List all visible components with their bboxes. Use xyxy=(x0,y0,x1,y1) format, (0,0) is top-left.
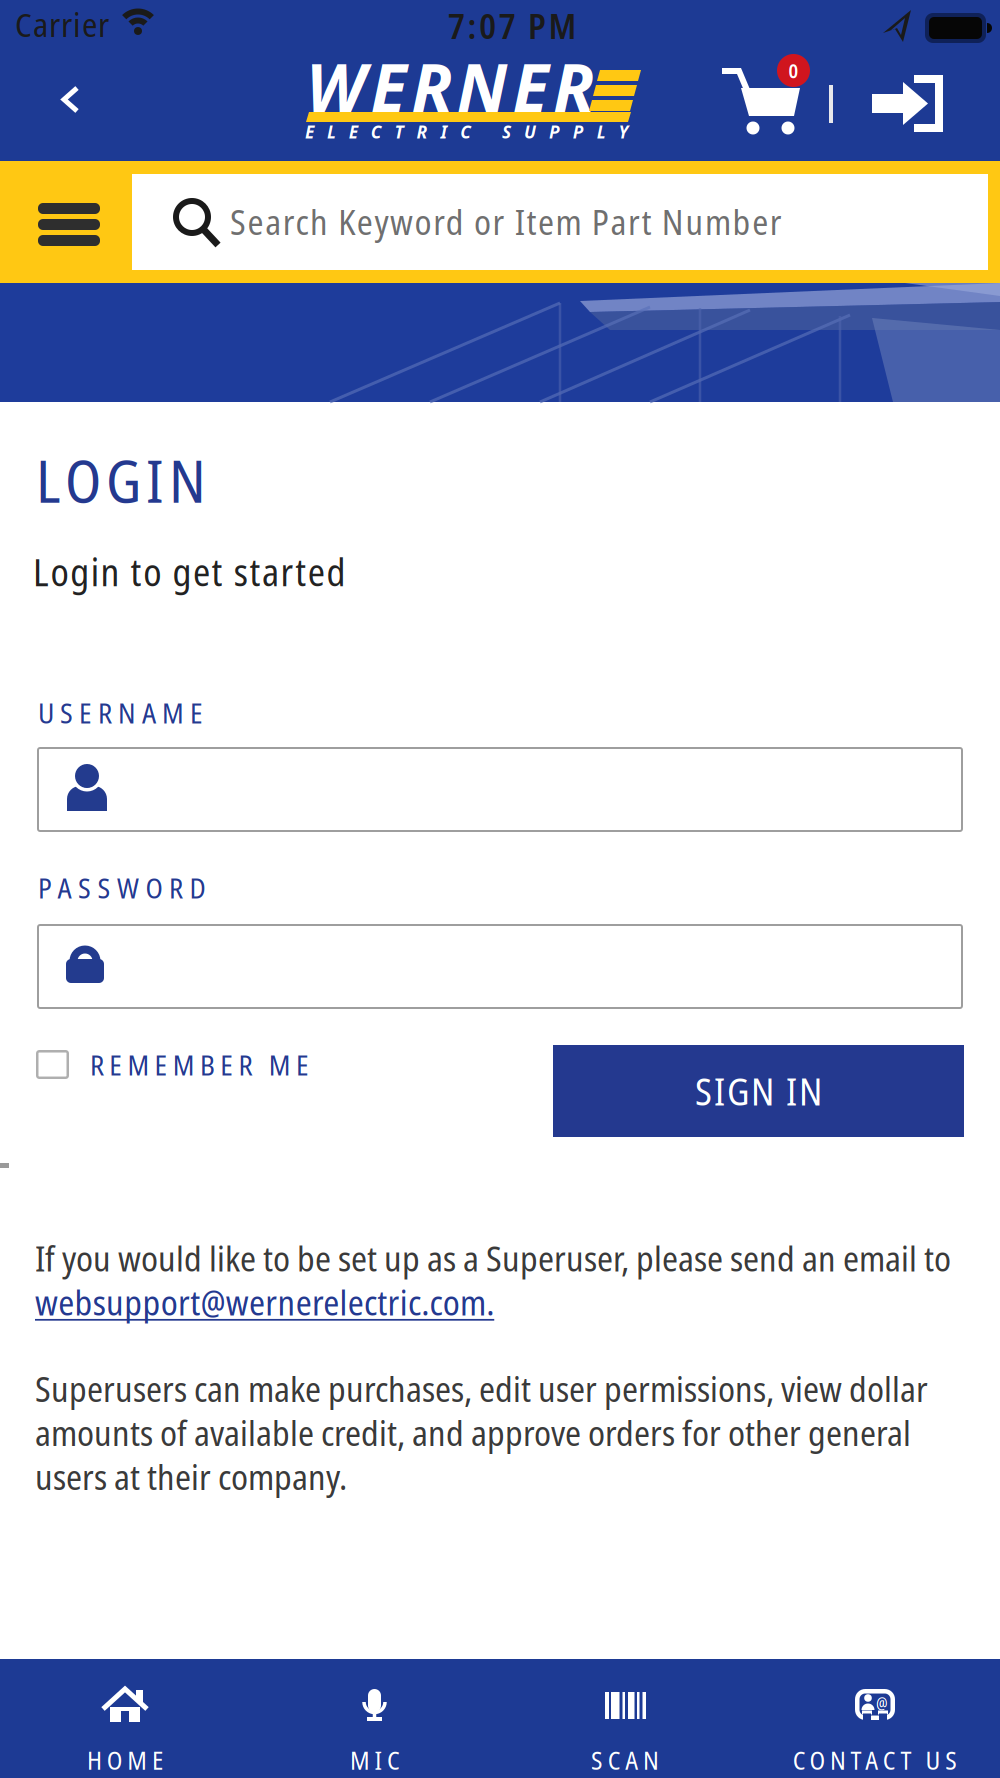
staticText: WERNER xyxy=(306,41,594,132)
staticText: PASSWORD xyxy=(38,869,205,906)
staticText: E xyxy=(220,1046,233,1083)
staticText: Carrier xyxy=(15,2,109,46)
button[interactable]: Username xyxy=(37,747,963,832)
staticText: HOME xyxy=(87,1743,163,1777)
staticText: S xyxy=(502,120,511,144)
staticText: Y xyxy=(619,120,629,144)
button[interactable]: Search Keyword or Item Part Number xyxy=(132,174,988,270)
button[interactable]: Remember Me xyxy=(36,1040,326,1092)
staticText: If you would like to be set up as a Supe… xyxy=(35,1235,951,1281)
staticText: Superusers can make purchases, edit user… xyxy=(35,1365,928,1411)
staticText xyxy=(484,120,489,144)
staticText: P xyxy=(573,120,584,144)
button[interactable]: HOME xyxy=(0,1659,250,1778)
staticText: L xyxy=(597,120,606,144)
staticText: L xyxy=(327,120,336,144)
staticText: 7:07 PM xyxy=(448,2,577,48)
staticText: T xyxy=(395,120,404,144)
staticText: @ xyxy=(876,1692,888,1714)
staticText: E xyxy=(349,120,358,144)
staticText: R xyxy=(416,120,427,144)
staticText: M xyxy=(269,1046,291,1083)
staticText: R xyxy=(238,1046,252,1083)
button[interactable]: Password xyxy=(37,924,963,1009)
staticText: P xyxy=(549,120,560,144)
button[interactable]: SCAN xyxy=(500,1659,750,1778)
staticText: 0 xyxy=(788,57,798,84)
staticText: M xyxy=(127,1046,149,1083)
staticText: users at their company. xyxy=(35,1453,347,1499)
staticText: B xyxy=(200,1046,215,1083)
button[interactable]: Menu xyxy=(25,178,113,266)
staticText: websupport@wernerelectric.com. xyxy=(35,1279,494,1325)
staticText: CONTACT US xyxy=(793,1743,957,1777)
staticText: USERNAME xyxy=(38,694,203,731)
staticText: M xyxy=(173,1046,195,1083)
staticText: SCAN xyxy=(591,1743,659,1777)
button[interactable]: @ xyxy=(750,1659,1000,1778)
button[interactable]: SIGN IN xyxy=(553,1045,964,1137)
button[interactable]: Back xyxy=(43,70,100,128)
staticText: U xyxy=(524,120,536,144)
staticText: E xyxy=(109,1046,122,1083)
staticText: Search Keyword or Item Part Number xyxy=(230,198,782,244)
button[interactable]: MIC xyxy=(250,1659,500,1778)
staticText: E xyxy=(305,120,314,144)
staticText: Login to get started xyxy=(33,547,345,597)
staticText: amounts of available credit, and approve… xyxy=(35,1409,911,1455)
button[interactable]: Sign In xyxy=(862,65,952,142)
staticText: E xyxy=(155,1046,168,1083)
staticText: E xyxy=(296,1046,309,1083)
staticText: MIC xyxy=(350,1743,400,1777)
staticText: I xyxy=(440,120,447,144)
staticText: LOGIN xyxy=(36,441,206,519)
staticText: SIGN IN xyxy=(695,1066,822,1116)
staticText: C xyxy=(460,120,471,144)
staticText: R xyxy=(90,1046,104,1083)
button[interactable]: websupport@wernerelectric.com. xyxy=(35,1279,494,1325)
staticText: C xyxy=(371,120,382,144)
button[interactable]: Cart xyxy=(715,50,815,140)
